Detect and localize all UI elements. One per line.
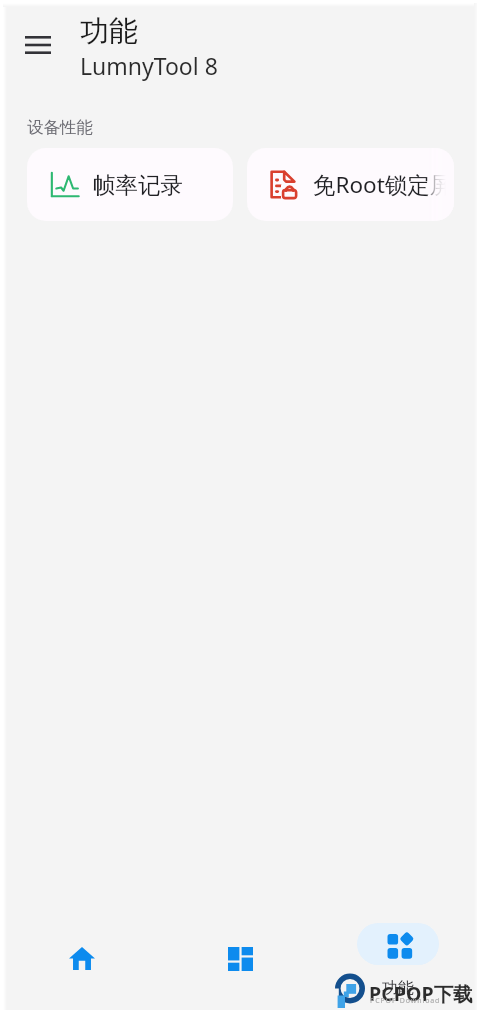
button[interactable]: 主页	[3, 912, 161, 971]
staticText: 免Root锁定屏幕	[313, 169, 454, 200]
staticText: 功能	[382, 978, 414, 998]
button[interactable]: 功能	[319, 912, 477, 998]
button[interactable]: Menu	[14, 21, 62, 69]
staticText: PCPOP Download	[370, 996, 441, 1006]
staticText: 设备性能	[27, 117, 93, 138]
staticText: 功能	[80, 13, 138, 50]
button[interactable]: 帧率记录	[27, 148, 233, 221]
staticText: PCPOP下载	[369, 980, 473, 1007]
button[interactable]: 免Root锁定屏幕	[247, 148, 454, 221]
staticText: 帧率记录	[93, 171, 183, 199]
button[interactable]: 工具	[161, 912, 319, 971]
staticText: LumnyTool 8	[80, 50, 218, 81]
